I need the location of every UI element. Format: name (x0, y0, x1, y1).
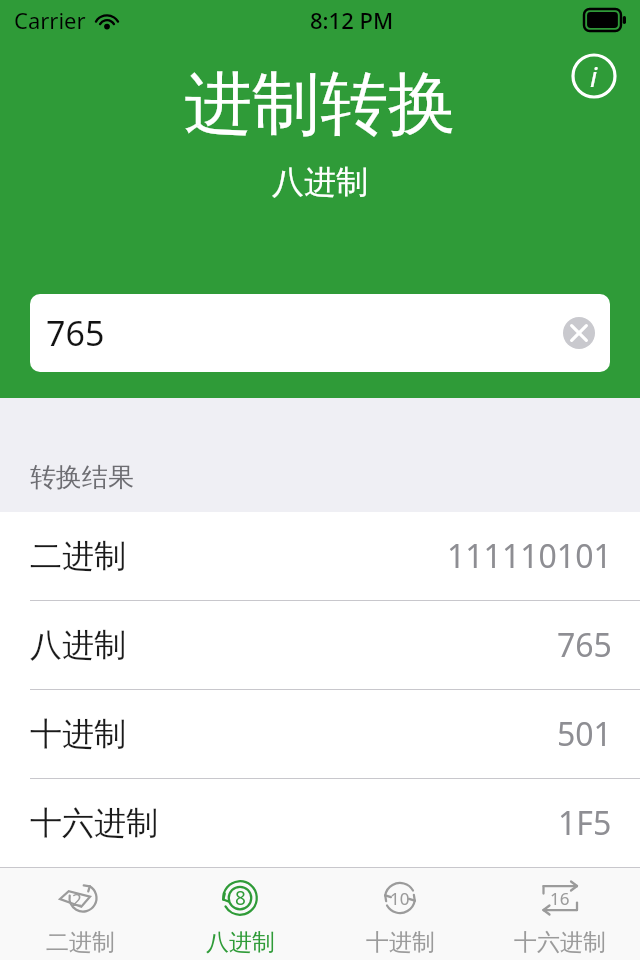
staticText: 八进制 (272, 162, 368, 202)
button[interactable]: 十六进制 (0, 779, 640, 867)
staticText: 二进制 (46, 928, 115, 957)
staticText: i (590, 57, 598, 95)
staticText: 十进制 (366, 928, 435, 957)
button[interactable]: 十进制 (0, 690, 640, 779)
button[interactable]: 8 (160, 868, 320, 960)
staticText: 765 (557, 623, 612, 667)
staticText: 二进制 (30, 536, 126, 576)
button[interactable]: 八进制 (0, 601, 640, 690)
button[interactable]: Clear text (561, 315, 597, 351)
button[interactable]: 765 (30, 294, 610, 372)
staticText: 10 (390, 887, 410, 910)
staticText: 8:12 PM (310, 5, 394, 35)
staticText: Carrier (14, 5, 86, 35)
button[interactable]: 2 (0, 868, 160, 960)
button[interactable]: 16 (480, 868, 640, 960)
staticText: 转换结果 (30, 461, 134, 494)
staticText: 16 (550, 887, 570, 910)
staticText: 十进制 (30, 714, 126, 754)
staticText: 8 (235, 885, 246, 911)
button[interactable]: Info (570, 52, 618, 100)
staticText: 八进制 (30, 625, 126, 665)
staticText: 进制转换 (184, 62, 456, 148)
staticText: 十六进制 (30, 803, 158, 843)
button[interactable]: 二进制 (0, 512, 640, 601)
staticText: 2 (72, 888, 82, 911)
button[interactable]: 10 (320, 868, 480, 960)
staticText: 501 (557, 712, 612, 756)
staticText: 765 (46, 310, 105, 356)
staticText: 1F5 (558, 801, 612, 845)
staticText: 十六进制 (514, 928, 606, 957)
staticText: 111110101 (447, 534, 612, 578)
staticText: 八进制 (206, 928, 275, 957)
